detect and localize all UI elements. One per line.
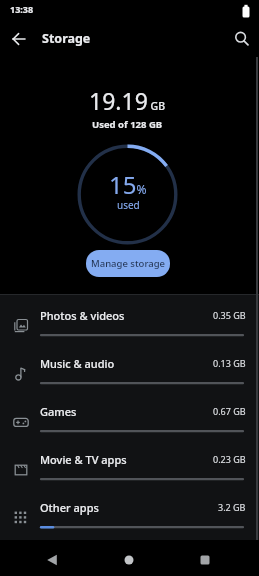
button[interactable]: Games: [0, 392, 259, 440]
staticText: 0.35 GB: [213, 309, 246, 321]
button[interactable]: [112, 543, 146, 576]
button[interactable]: [35, 543, 69, 576]
button[interactable]: [6, 26, 32, 52]
staticText: Other apps: [40, 500, 99, 515]
button[interactable]: Photos & videos: [0, 296, 259, 344]
button[interactable]: [230, 27, 254, 51]
staticText: used: [117, 198, 140, 212]
staticText: Manage storage: [91, 257, 166, 270]
staticText: 19.19 GB: [89, 85, 166, 116]
staticText: Movie & TV apps: [40, 452, 127, 467]
button[interactable]: Manage storage: [86, 250, 170, 277]
staticText: Storage: [42, 30, 91, 47]
staticText: Used of 128 GB: [92, 118, 163, 131]
staticText: 3.2 GB: [218, 501, 246, 513]
staticText: Photos & videos: [40, 308, 125, 323]
staticText: 0.13 GB: [213, 357, 246, 369]
staticText: 0.23 GB: [213, 453, 246, 465]
staticText: Games: [40, 404, 77, 419]
staticText: 15%: [109, 168, 147, 201]
staticText: 13:38: [10, 3, 34, 15]
staticText: 0.67 GB: [213, 405, 246, 417]
button[interactable]: Movie & TV apps: [0, 440, 259, 488]
button[interactable]: [188, 543, 222, 576]
staticText: Music & audio: [40, 356, 115, 371]
button[interactable]: Other apps: [0, 488, 259, 536]
button[interactable]: Music & audio: [0, 344, 259, 392]
